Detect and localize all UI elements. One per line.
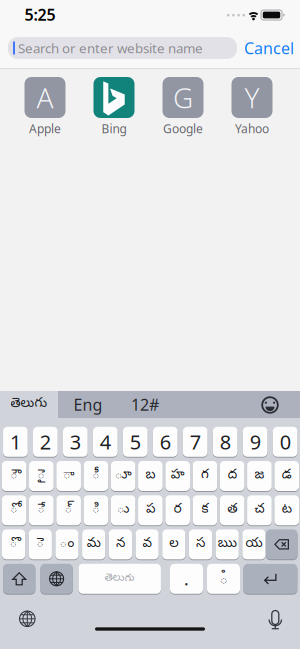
button[interactable]: తెలుగు	[0, 391, 58, 418]
button[interactable]: డ	[274, 460, 299, 491]
button[interactable]: Cancel	[244, 37, 294, 59]
button[interactable]: G	[162, 77, 203, 139]
staticText: ొ	[10, 536, 18, 553]
staticText: డ	[282, 467, 292, 485]
staticText: 2	[40, 428, 51, 455]
button[interactable]: Y	[231, 77, 272, 139]
staticText: 9	[250, 428, 261, 455]
staticText: 6	[160, 428, 171, 455]
button[interactable]: న	[109, 529, 132, 560]
button[interactable]: ట	[274, 495, 299, 526]
button[interactable]: Return	[243, 563, 297, 594]
button[interactable]: ల	[162, 529, 185, 560]
button[interactable]: త	[220, 495, 244, 526]
button[interactable]: ా	[56, 460, 81, 491]
staticText: Eng	[73, 394, 102, 415]
button[interactable]: ర	[165, 495, 190, 526]
button[interactable]: Shift	[3, 563, 35, 594]
button[interactable]: ఄ	[207, 563, 240, 594]
staticText: 5	[130, 428, 141, 455]
button[interactable]: A	[24, 77, 65, 139]
staticText: జ	[254, 467, 264, 485]
button[interactable]: ం	[55, 529, 79, 560]
button[interactable]: జ	[247, 460, 272, 491]
staticText: ె	[36, 536, 44, 553]
button[interactable]: ై	[29, 460, 54, 491]
button[interactable]: Dictation	[267, 609, 284, 629]
button[interactable]: 6	[153, 426, 178, 457]
button[interactable]: ప	[138, 495, 163, 526]
staticText: ౌ	[10, 467, 18, 485]
button[interactable]: Space	[78, 563, 161, 594]
button[interactable]: Next keyboard	[40, 563, 73, 594]
staticText: 4	[100, 428, 111, 455]
button[interactable]: Bing	[93, 77, 134, 139]
button[interactable]: Search or enter website name	[8, 37, 237, 59]
button[interactable]: ొ	[2, 529, 25, 560]
staticText: Search or enter website name	[18, 39, 203, 57]
staticText: Yahoo	[235, 120, 269, 136]
button[interactable]: ౌ	[2, 460, 26, 491]
button[interactable]: ద	[220, 460, 244, 491]
button[interactable]: 4	[93, 426, 118, 457]
button[interactable]: గ	[193, 460, 217, 491]
staticText: మ	[87, 536, 101, 553]
staticText: ర	[174, 501, 182, 519]
button[interactable]: క	[193, 495, 217, 526]
staticText: వ	[143, 536, 152, 553]
button[interactable]: ూ	[111, 460, 135, 491]
button[interactable]: Eng	[63, 391, 113, 418]
button[interactable]: వ	[135, 529, 159, 560]
staticText: స	[196, 536, 205, 553]
staticText: ీ	[92, 467, 100, 485]
button[interactable]: Next keyboard	[20, 611, 35, 626]
button[interactable]: 3	[63, 426, 88, 457]
button[interactable]: బ	[138, 460, 163, 491]
button[interactable]: 7	[183, 426, 208, 457]
staticText: ా	[63, 467, 74, 485]
staticText: Apple	[29, 120, 61, 136]
staticText: 8	[220, 428, 231, 455]
button[interactable]: 0	[273, 426, 297, 457]
button[interactable]: స	[189, 529, 212, 560]
button[interactable]: 9	[243, 426, 267, 457]
button[interactable]: ీ	[83, 460, 108, 491]
button[interactable]: మ	[82, 529, 105, 560]
staticText: ై	[37, 467, 45, 485]
staticText: Bing	[101, 120, 126, 136]
button[interactable]: ె	[29, 529, 52, 560]
button[interactable]: హ	[165, 460, 190, 491]
button[interactable]: 2	[33, 426, 58, 457]
staticText: ల	[169, 536, 178, 553]
staticText: Cancel	[244, 37, 294, 59]
staticText: 3	[70, 428, 81, 455]
staticText: ఄ	[219, 571, 227, 590]
button[interactable]: 1	[3, 426, 28, 457]
button[interactable]: 8	[213, 426, 237, 457]
staticText: న	[116, 536, 125, 553]
staticText: ద	[228, 467, 237, 485]
button[interactable]: ఋ	[216, 529, 239, 560]
staticText: ో	[10, 501, 18, 519]
staticText: Y	[244, 79, 259, 116]
staticText: ూ	[115, 467, 132, 485]
staticText: G	[173, 79, 193, 116]
button[interactable]: ో	[2, 495, 26, 526]
staticText: ్	[65, 501, 73, 519]
staticText: 5:25	[24, 4, 55, 25]
button[interactable]: .	[170, 563, 203, 594]
button[interactable]: ే	[29, 495, 54, 526]
staticText: ప	[146, 501, 155, 519]
button[interactable]: Emoji	[258, 393, 282, 417]
button[interactable]: Delete	[266, 529, 297, 560]
button[interactable]: 12#	[120, 391, 170, 418]
button[interactable]: 5	[123, 426, 148, 457]
button[interactable]: ు	[111, 495, 135, 526]
staticText: ు	[117, 501, 130, 519]
button[interactable]: య	[242, 529, 265, 560]
button[interactable]: ి	[83, 495, 108, 526]
button[interactable]: ్	[56, 495, 81, 526]
staticText: A	[36, 79, 53, 116]
staticText: య	[245, 536, 262, 553]
button[interactable]: చ	[247, 495, 272, 526]
